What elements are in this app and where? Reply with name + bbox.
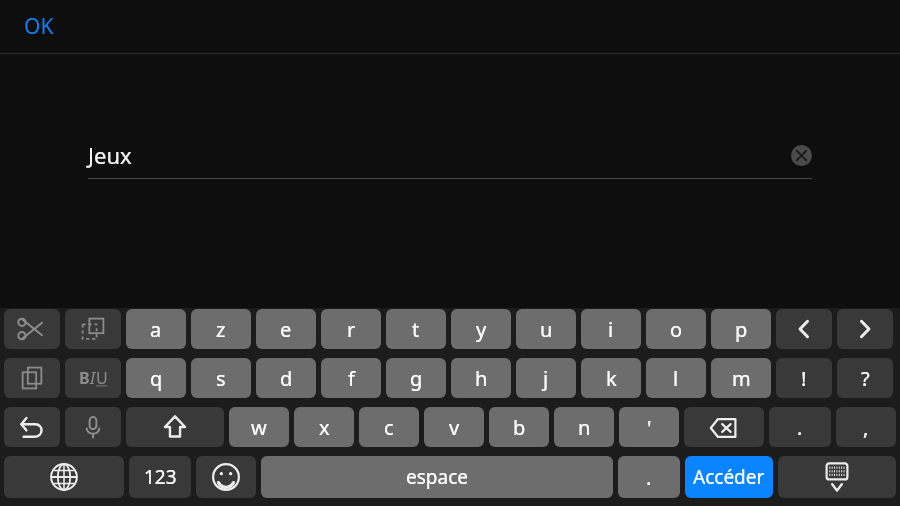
staticText: ,	[863, 414, 869, 441]
staticText: c	[384, 414, 394, 441]
staticText: a	[150, 316, 162, 343]
button[interactable]: r	[321, 309, 381, 349]
staticText: q	[150, 365, 163, 392]
button[interactable]: Select	[65, 309, 121, 349]
button[interactable]: .	[618, 456, 680, 498]
staticText: v	[449, 414, 460, 441]
staticText: I	[90, 367, 96, 389]
staticText: o	[670, 316, 683, 343]
staticText: f	[348, 365, 355, 392]
button[interactable]: g	[386, 358, 446, 398]
staticText: u	[540, 316, 553, 343]
staticText: i	[608, 316, 614, 343]
button[interactable]: !	[776, 358, 832, 398]
staticText: z	[216, 316, 226, 343]
button[interactable]: x	[294, 407, 354, 447]
button[interactable]: espace	[261, 456, 613, 498]
staticText: n	[578, 414, 591, 441]
button[interactable]: v	[424, 407, 484, 447]
staticText: B	[79, 367, 90, 389]
button[interactable]: ?	[837, 358, 893, 398]
staticText: m	[732, 365, 751, 392]
button[interactable]: Copy	[4, 358, 60, 398]
button[interactable]: n	[554, 407, 614, 447]
staticText: 123	[144, 464, 177, 490]
button[interactable]: e	[256, 309, 316, 349]
button[interactable]: k	[581, 358, 641, 398]
staticText: k	[606, 365, 617, 392]
staticText: j	[543, 365, 549, 392]
staticText: x	[319, 414, 330, 441]
button[interactable]: m	[711, 358, 771, 398]
button[interactable]: p	[711, 309, 771, 349]
button[interactable]: Accéder	[685, 456, 773, 498]
staticText: OK	[24, 12, 54, 41]
button[interactable]: Hide keyboard	[778, 456, 896, 498]
staticText: '	[647, 414, 652, 441]
button[interactable]: Backspace	[684, 407, 764, 447]
button[interactable]: Move left	[776, 309, 832, 349]
staticText: e	[280, 316, 292, 343]
staticText: ?	[861, 365, 870, 392]
staticText: Accéder	[693, 464, 765, 490]
button[interactable]: Text formatting	[65, 358, 121, 398]
button[interactable]: t	[386, 309, 446, 349]
button[interactable]: Dictate	[65, 407, 121, 447]
staticText: Jeux	[88, 140, 132, 170]
staticText: U	[96, 367, 108, 389]
staticText: s	[216, 365, 226, 392]
button[interactable]: i	[581, 309, 641, 349]
staticText: h	[475, 365, 488, 392]
button[interactable]: u	[516, 309, 576, 349]
button[interactable]: Change language	[4, 456, 124, 498]
staticText: r	[347, 316, 356, 343]
button[interactable]: Jeux	[88, 132, 812, 178]
button[interactable]: 123	[129, 456, 191, 498]
button[interactable]: d	[256, 358, 316, 398]
button[interactable]: .	[769, 407, 831, 447]
button[interactable]: a	[126, 309, 186, 349]
button[interactable]: Cut	[4, 309, 60, 349]
button[interactable]: o	[646, 309, 706, 349]
staticText: d	[280, 365, 293, 392]
button[interactable]: Move right	[837, 309, 893, 349]
button[interactable]: s	[191, 358, 251, 398]
button[interactable]: ,	[836, 407, 896, 447]
staticText: .	[646, 464, 652, 491]
staticText: !	[801, 365, 807, 392]
button[interactable]: Shift	[126, 407, 224, 447]
staticText: p	[735, 316, 748, 343]
button[interactable]: OK	[24, 12, 54, 41]
button[interactable]: l	[646, 358, 706, 398]
button[interactable]: j	[516, 358, 576, 398]
button[interactable]: h	[451, 358, 511, 398]
staticText: w	[251, 414, 267, 441]
button[interactable]: '	[619, 407, 679, 447]
button[interactable]: Undo	[4, 407, 60, 447]
button[interactable]: w	[229, 407, 289, 447]
button[interactable]: Emoji	[196, 456, 256, 498]
staticText: y	[476, 316, 487, 343]
staticText: g	[410, 365, 423, 392]
button[interactable]: c	[359, 407, 419, 447]
staticText: .	[797, 414, 803, 441]
staticText: b	[513, 414, 526, 441]
staticText: espace	[406, 464, 468, 490]
button[interactable]: y	[451, 309, 511, 349]
button[interactable]: Clear text	[791, 145, 812, 166]
staticText: t	[412, 316, 420, 343]
button[interactable]: f	[321, 358, 381, 398]
staticText: l	[673, 365, 679, 392]
button[interactable]: z	[191, 309, 251, 349]
button[interactable]: q	[126, 358, 186, 398]
button[interactable]: b	[489, 407, 549, 447]
